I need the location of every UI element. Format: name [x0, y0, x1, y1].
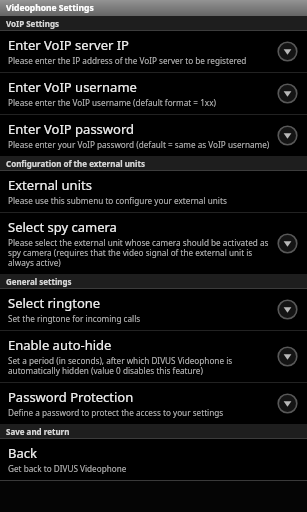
button[interactable]: External units [0, 171, 307, 212]
button[interactable]: Open option [275, 81, 299, 105]
button[interactable]: Enter VoIP server IP [0, 31, 307, 72]
staticText: Please select the external unit whose ca… [8, 237, 273, 268]
staticText: Password Protection [8, 388, 134, 406]
staticText: Select spy camera [8, 218, 117, 236]
staticText: General settings [6, 276, 72, 287]
button[interactable]: Open option [275, 297, 299, 321]
staticText: Please enter the VoIP username (default … [8, 97, 216, 108]
button[interactable]: Open option [275, 344, 299, 368]
button[interactable]: Password Protection [0, 383, 307, 424]
staticText: Enter VoIP server IP [8, 36, 129, 54]
button[interactable]: Select ringtone [0, 289, 307, 330]
staticText: VoIP Settings [6, 18, 59, 29]
staticText: Define a password to protect the access … [8, 407, 224, 418]
button[interactable]: Open option [275, 231, 299, 255]
button[interactable]: Open option [275, 123, 299, 147]
staticText: Select ringtone [8, 294, 101, 312]
staticText: External units [8, 176, 92, 194]
staticText: Please use this submenu to configure you… [8, 195, 227, 206]
staticText: Videophone Settings [6, 2, 94, 14]
staticText: Set the ringtone for incoming calls [8, 313, 141, 324]
staticText: Save and return [6, 426, 70, 437]
staticText: Set a period (in seconds), after which D… [8, 355, 273, 376]
staticText: Back [8, 444, 37, 462]
staticText: Configuration of the external units [6, 158, 145, 169]
button[interactable]: Select spy camera [0, 213, 307, 274]
button[interactable]: Enter VoIP username [0, 73, 307, 114]
button[interactable]: Open option [275, 39, 299, 63]
staticText: Please enter the IP address of the VoIP … [8, 55, 247, 66]
staticText: Get back to DIVUS Videophone [8, 463, 127, 474]
button[interactable]: Enter VoIP password [0, 115, 307, 156]
button[interactable]: Back [0, 439, 307, 480]
staticText: Please enter your VoIP password (default… [8, 139, 270, 150]
button[interactable]: Open option [275, 391, 299, 415]
button[interactable]: Enable auto-hide [0, 331, 307, 382]
staticText: Enable auto-hide [8, 336, 112, 354]
staticText: Enter VoIP username [8, 78, 137, 96]
staticText: Enter VoIP password [8, 120, 135, 138]
